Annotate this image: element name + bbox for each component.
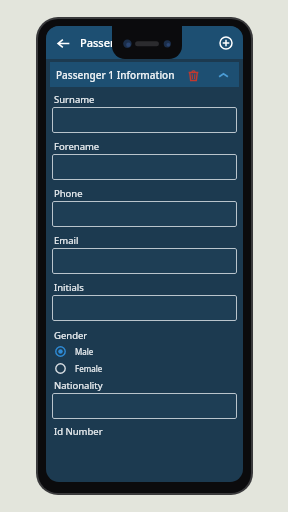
staticText: Initials [54, 281, 84, 294]
staticText: Passenger 1 Information [56, 68, 175, 82]
staticText: Male [75, 346, 94, 357]
button[interactable] [52, 295, 237, 321]
staticText: Nationality [54, 379, 103, 392]
staticText: Phone [54, 187, 83, 200]
button[interactable]: Collapse section [213, 65, 233, 85]
button[interactable]: Female [50, 360, 239, 377]
button[interactable]: Male [50, 343, 239, 360]
staticText: Gender [54, 329, 88, 342]
button[interactable] [52, 107, 237, 133]
button[interactable] [52, 248, 237, 274]
staticText: Surname [54, 93, 95, 106]
button[interactable] [52, 201, 237, 227]
button[interactable]: Back [51, 31, 75, 55]
button[interactable]: Passenger 1 Information [50, 62, 239, 87]
staticText: Id Number [54, 425, 103, 438]
staticText: Email [54, 234, 79, 247]
button[interactable]: Delete passenger [183, 65, 203, 85]
staticText: Forename [54, 140, 100, 153]
staticText: Passenger Details [80, 35, 174, 50]
button[interactable] [52, 154, 237, 180]
button[interactable] [52, 393, 237, 419]
button[interactable]: Add passenger [214, 31, 238, 55]
staticText: Female [75, 363, 103, 374]
